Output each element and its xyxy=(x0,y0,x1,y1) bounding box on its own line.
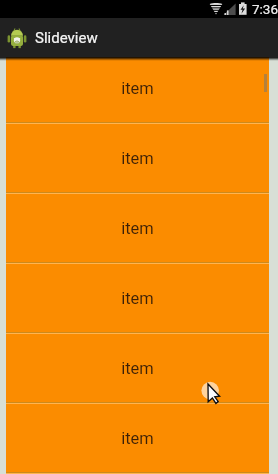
staticText: item xyxy=(121,219,154,238)
button[interactable]: item xyxy=(6,402,269,472)
staticText: item xyxy=(121,289,154,308)
button[interactable]: item xyxy=(6,57,269,122)
staticText: item xyxy=(121,429,154,448)
button[interactable]: item xyxy=(6,332,269,402)
staticText: item xyxy=(121,79,154,98)
button[interactable]: item xyxy=(6,262,269,332)
staticText: item xyxy=(121,359,154,378)
staticText: Slideview xyxy=(35,29,98,47)
button[interactable]: item xyxy=(6,192,269,262)
staticText: item xyxy=(121,149,154,168)
other: App icon xyxy=(7,27,27,49)
staticText: 7:36 xyxy=(252,1,278,17)
button[interactable]: item xyxy=(6,122,269,192)
